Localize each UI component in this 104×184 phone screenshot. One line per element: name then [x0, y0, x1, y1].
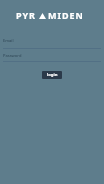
staticText: Email	[3, 38, 14, 43]
button[interactable]: Password	[3, 53, 101, 62]
staticText: Password	[3, 53, 22, 58]
button[interactable]: login	[42, 71, 62, 79]
staticText: PYR	[16, 9, 36, 21]
staticText: MIDEN	[48, 9, 84, 21]
staticText: login	[47, 72, 58, 78]
button[interactable]: Email	[3, 38, 101, 49]
other: Pyramiden logo	[39, 13, 46, 19]
